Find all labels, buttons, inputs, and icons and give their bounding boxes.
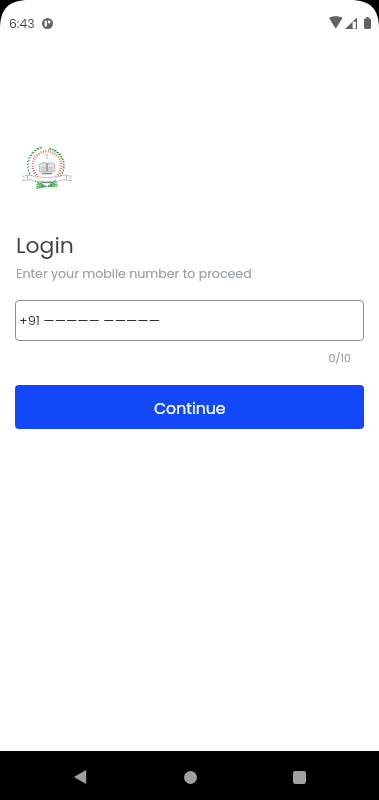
- button[interactable]: Home: [170, 757, 210, 797]
- button[interactable]: Recent apps: [279, 757, 319, 797]
- staticText: 6:43: [9, 15, 35, 32]
- staticText: Login: [16, 230, 74, 261]
- staticText: Continue: [154, 398, 226, 420]
- staticText: Enter your mobile number to proceed: [16, 265, 252, 283]
- staticText: 0/10: [0, 350, 351, 365]
- button[interactable]: Continue: [15, 385, 364, 429]
- button[interactable]: Back: [60, 757, 100, 797]
- button[interactable]: +91 ————— —————: [15, 300, 364, 341]
- staticText: +91 ————— —————: [19, 312, 160, 330]
